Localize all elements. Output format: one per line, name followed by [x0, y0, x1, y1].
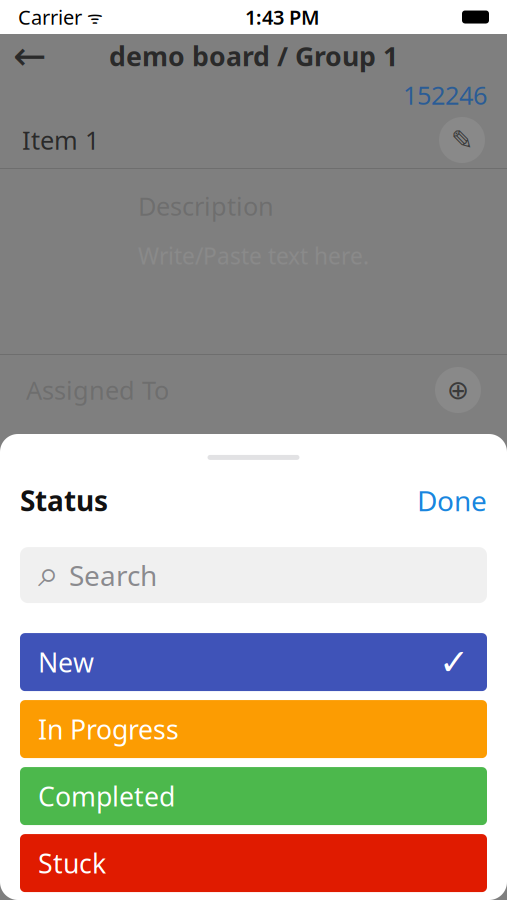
- staticText: Done: [417, 482, 487, 519]
- button[interactable]: Back: [8, 34, 52, 78]
- staticText: ✎: [451, 125, 473, 155]
- staticText: ✓: [439, 642, 469, 683]
- button[interactable]: Stuck: [20, 834, 487, 892]
- staticText: New: [38, 644, 94, 680]
- staticText: demo board / Group 1: [109, 38, 398, 74]
- staticText: Stuck: [38, 845, 106, 881]
- staticText: Item 1: [22, 123, 99, 157]
- staticText: Carrier: [18, 4, 82, 30]
- staticText: Search: [69, 556, 157, 594]
- staticText: Completed: [38, 778, 175, 814]
- staticText: Write/Paste text here.: [138, 241, 369, 271]
- staticText: 1:43 PM: [245, 4, 320, 30]
- staticText: ⌕: [38, 557, 59, 593]
- button[interactable]: Done: [417, 482, 487, 519]
- staticText: ᯤ: [82, 5, 103, 28]
- staticText: Description: [138, 189, 274, 223]
- staticText: In Progress: [38, 711, 179, 747]
- staticText: ⊕: [447, 375, 469, 405]
- staticText: 152246: [403, 78, 487, 112]
- button[interactable]: Completed: [20, 767, 487, 825]
- staticText: Status: [20, 482, 108, 519]
- staticText: ←: [13, 33, 47, 79]
- button[interactable]: New: [20, 633, 487, 691]
- staticText: Assigned To: [26, 373, 169, 407]
- button[interactable]: In Progress: [20, 700, 487, 758]
